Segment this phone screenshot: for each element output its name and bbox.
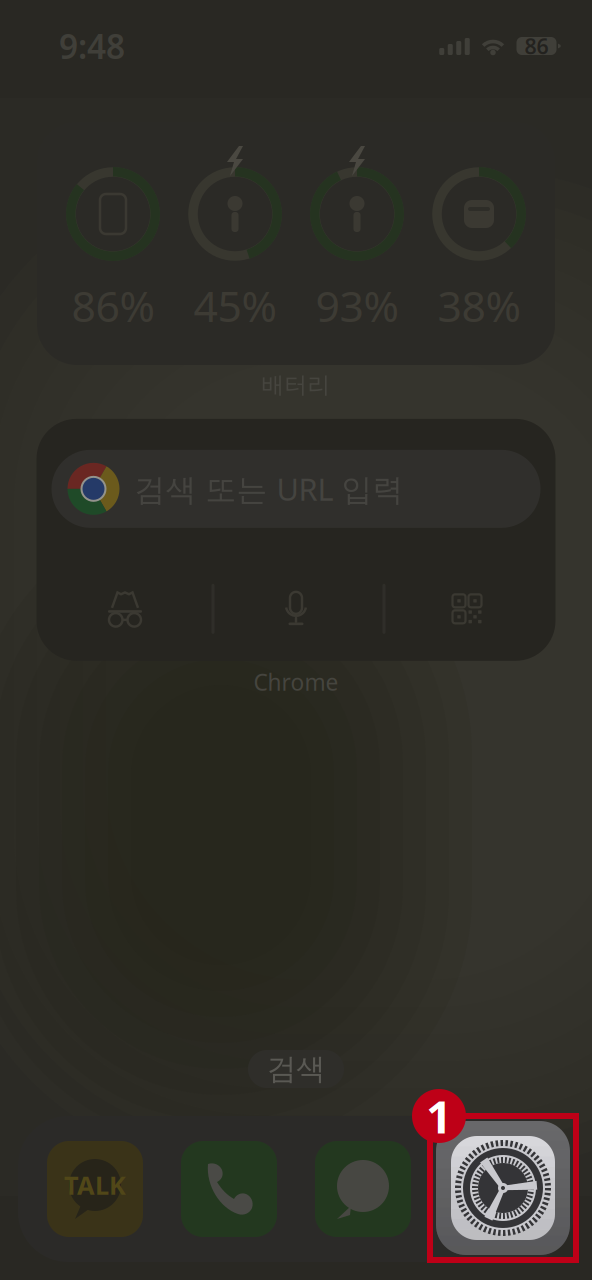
button[interactable]: KakaoTalk (47, 1141, 143, 1237)
button[interactable]: 검색 (248, 1050, 344, 1088)
button[interactable]: Phone (181, 1141, 277, 1237)
staticText: 86% (71, 277, 154, 334)
staticText: 86 (524, 32, 548, 60)
staticText: Chrome (253, 667, 338, 697)
button[interactable]: Scan QR Code (381, 569, 552, 649)
staticText: 38% (437, 277, 520, 334)
staticText: 검색 (267, 1051, 325, 1087)
staticText: 1 (426, 1086, 452, 1146)
staticText: 9:48 (59, 24, 125, 68)
staticText: 배터리 (261, 371, 330, 399)
button[interactable]: Messages (315, 1141, 411, 1237)
staticText: 검색 또는 URL 입력 (134, 468, 403, 509)
staticText: 93% (315, 277, 398, 334)
button[interactable]: Settings (430, 1116, 576, 1260)
button[interactable]: New Incognito Tab (39, 569, 210, 649)
button[interactable]: 검색 또는 URL 입력 (51, 450, 540, 528)
staticText: 45% (193, 277, 276, 334)
staticText: TALK (64, 1168, 126, 1202)
